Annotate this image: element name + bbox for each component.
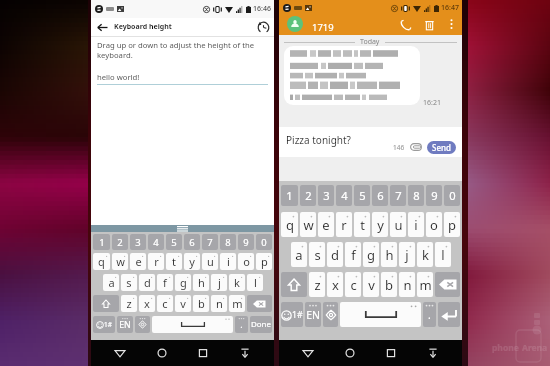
button[interactable]: k xyxy=(229,274,245,291)
button[interactable] xyxy=(438,302,460,327)
button[interactable]: 0 xyxy=(256,234,272,250)
button[interactable]: 9 xyxy=(426,185,442,206)
button[interactable]: n xyxy=(399,272,415,297)
button[interactable]: v xyxy=(175,295,191,312)
button[interactable]: w xyxy=(300,212,316,237)
button[interactable]: x xyxy=(139,295,155,312)
button[interactable]: p xyxy=(256,253,272,270)
button[interactable]: 6 xyxy=(184,234,200,250)
button[interactable]: l xyxy=(247,274,263,291)
button[interactable]: y xyxy=(184,253,200,270)
button[interactable]: Hide keyboard xyxy=(233,341,257,365)
button[interactable] xyxy=(93,295,119,312)
button[interactable]: f xyxy=(345,242,361,267)
button[interactable]: o xyxy=(238,253,254,270)
button[interactable]: Call xyxy=(397,17,414,34)
button[interactable]: 8 xyxy=(408,185,424,206)
button[interactable]: j xyxy=(399,242,415,267)
button[interactable] xyxy=(281,272,307,297)
button[interactable]: 1 xyxy=(93,234,110,250)
button[interactable]: 3 xyxy=(130,234,146,250)
button[interactable]: o xyxy=(426,212,442,237)
button[interactable]: g xyxy=(175,274,191,291)
button[interactable]: Delete xyxy=(421,17,437,33)
button[interactable]: t xyxy=(166,253,182,270)
button[interactable]: 8 xyxy=(220,234,236,250)
button[interactable]: Recent apps xyxy=(379,341,403,365)
button[interactable]: Attach file xyxy=(409,140,423,154)
button[interactable]: r xyxy=(148,253,164,270)
button[interactable]: e xyxy=(130,253,146,270)
button[interactable]: k xyxy=(417,242,433,267)
button[interactable]: j xyxy=(211,274,227,291)
button[interactable]: 7 xyxy=(202,234,218,250)
button[interactable]: 2 xyxy=(112,234,128,250)
button[interactable]: r xyxy=(336,212,352,237)
button[interactable]: d xyxy=(327,242,343,267)
button[interactable]: y xyxy=(372,212,388,237)
button[interactable]: 1# xyxy=(93,316,115,333)
button[interactable]: Back xyxy=(296,341,320,365)
button[interactable]: c xyxy=(345,272,361,297)
button[interactable]: Home xyxy=(338,341,362,365)
button[interactable]: l xyxy=(435,242,451,267)
button[interactable] xyxy=(247,295,272,312)
button[interactable]: Reset to default xyxy=(255,19,271,35)
button[interactable]: w xyxy=(112,253,128,270)
button[interactable]: 6 xyxy=(372,185,388,206)
button[interactable]: d xyxy=(139,274,155,291)
button[interactable]: s xyxy=(121,274,137,291)
button[interactable]: Hide keyboard xyxy=(421,341,445,365)
button[interactable]: 5 xyxy=(354,185,370,206)
button[interactable]: v xyxy=(363,272,379,297)
button[interactable]: z xyxy=(309,272,325,297)
button[interactable]: q xyxy=(281,212,298,237)
button[interactable]: Send xyxy=(427,141,456,154)
button[interactable]: h xyxy=(193,274,209,291)
button[interactable]: EN xyxy=(305,302,321,327)
button[interactable]: . xyxy=(423,302,436,327)
button[interactable]: s xyxy=(309,242,325,267)
button[interactable]: 1# xyxy=(281,302,303,327)
button[interactable]: . xyxy=(235,316,248,333)
button[interactable] xyxy=(435,272,460,297)
button[interactable]: Home xyxy=(150,341,174,365)
button[interactable]: i xyxy=(220,253,236,270)
button[interactable]: i xyxy=(408,212,424,237)
button[interactable]: 3 xyxy=(318,185,334,206)
button[interactable]: a xyxy=(103,274,119,291)
button[interactable]: p xyxy=(444,212,460,237)
button[interactable]: u xyxy=(202,253,218,270)
button[interactable]: m xyxy=(229,295,245,312)
button[interactable]: 7 xyxy=(390,185,406,206)
button[interactable]: u xyxy=(390,212,406,237)
button[interactable]: 4 xyxy=(336,185,352,206)
button[interactable]: EN xyxy=(117,316,133,333)
button[interactable]: Back xyxy=(108,341,132,365)
button[interactable]: z xyxy=(121,295,137,312)
button[interactable]: g xyxy=(363,242,379,267)
button[interactable]: 9 xyxy=(238,234,254,250)
button[interactable]: 1 xyxy=(281,185,298,206)
button[interactable]: x xyxy=(327,272,343,297)
button[interactable]: Contact avatar xyxy=(287,16,303,32)
button[interactable]: e xyxy=(318,212,334,237)
button[interactable]: 2 xyxy=(300,185,316,206)
button[interactable]: h xyxy=(381,242,397,267)
button[interactable] xyxy=(323,302,338,327)
button[interactable]: f xyxy=(157,274,173,291)
button[interactable]: a xyxy=(291,242,307,267)
button[interactable]: t xyxy=(354,212,370,237)
button[interactable]: b xyxy=(193,295,209,312)
button[interactable]: q xyxy=(93,253,110,270)
button[interactable] xyxy=(284,46,420,105)
button[interactable]: More options xyxy=(444,17,458,31)
button[interactable] xyxy=(340,302,421,327)
button[interactable]: Navigate up xyxy=(95,20,110,35)
button[interactable]: 4 xyxy=(148,234,164,250)
button[interactable]: Done xyxy=(250,316,272,333)
button[interactable]: c xyxy=(157,295,173,312)
button[interactable]: 5 xyxy=(166,234,182,250)
button[interactable]: Recent apps xyxy=(191,341,215,365)
button[interactable]: n xyxy=(211,295,227,312)
